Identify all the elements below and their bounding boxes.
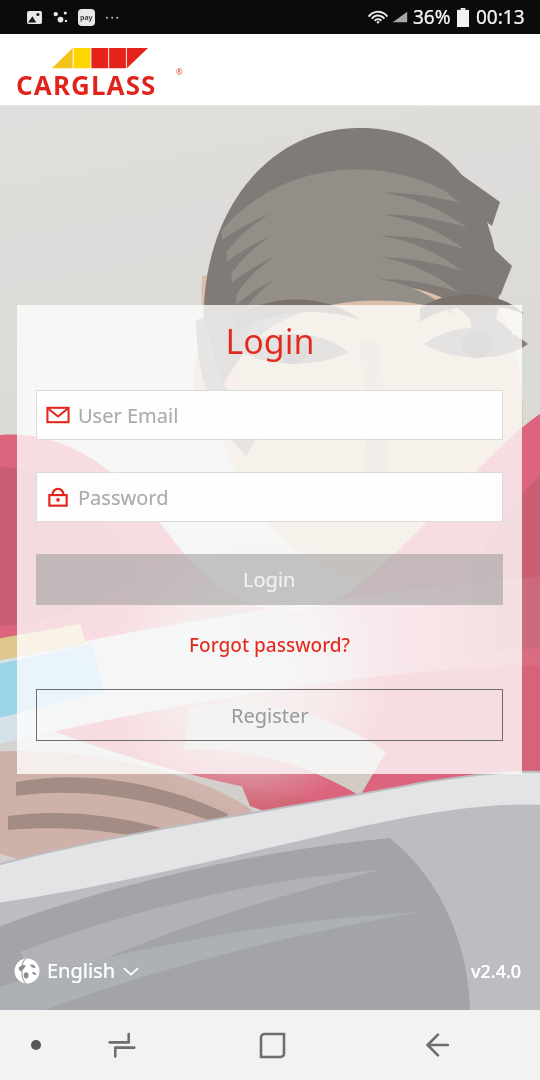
button[interactable]: Back xyxy=(372,1010,504,1080)
button[interactable]: Menu xyxy=(0,1010,72,1080)
staticText: English xyxy=(47,957,116,984)
button[interactable]: Home xyxy=(172,1010,372,1080)
button[interactable]: Forgot password? xyxy=(17,625,522,665)
staticText: Register xyxy=(231,702,309,729)
button[interactable]: Password xyxy=(36,472,503,522)
staticText: Forgot password? xyxy=(189,632,351,658)
staticText: Password xyxy=(78,484,169,511)
staticText: 36% xyxy=(413,4,451,30)
button[interactable]: Recent apps xyxy=(72,1010,172,1080)
staticText: pay xyxy=(80,13,93,23)
button[interactable]: Login xyxy=(36,554,503,605)
staticText: User Email xyxy=(78,402,179,429)
button[interactable]: User Email xyxy=(36,390,503,440)
button[interactable]: English xyxy=(14,957,140,984)
staticText: CARGLASS xyxy=(16,67,157,102)
staticText: Login xyxy=(225,318,315,364)
staticText: v2.4.0 xyxy=(471,959,522,984)
button[interactable]: Register xyxy=(36,689,503,741)
staticText: 00:13 xyxy=(476,4,525,30)
staticText: ® xyxy=(176,66,183,77)
staticText: Login xyxy=(243,566,296,593)
